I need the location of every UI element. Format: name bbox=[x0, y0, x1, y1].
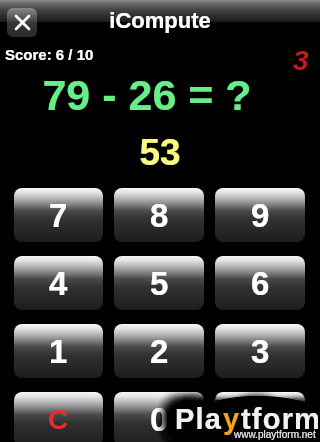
staticText: tform bbox=[240, 401, 320, 433]
staticText: Pla bbox=[174, 404, 222, 436]
staticText: 79 - 26 = ? bbox=[0, 71, 307, 119]
staticText: y bbox=[224, 403, 242, 435]
staticText: y bbox=[225, 404, 243, 436]
staticText: y bbox=[224, 402, 242, 434]
staticText: Pla bbox=[177, 402, 225, 434]
staticText: Pla bbox=[177, 404, 225, 436]
button[interactable]: 6 bbox=[215, 256, 305, 310]
button[interactable]: = bbox=[215, 392, 305, 442]
staticText: y bbox=[221, 405, 239, 437]
staticText: 5 bbox=[150, 265, 169, 302]
staticText: 8 bbox=[150, 197, 169, 234]
staticText: tform bbox=[241, 406, 320, 438]
staticText: y bbox=[223, 403, 241, 435]
button[interactable]: 7 bbox=[14, 188, 103, 242]
staticText: tform bbox=[242, 401, 320, 433]
staticText: y bbox=[223, 405, 241, 437]
staticText: Pla bbox=[173, 404, 221, 436]
staticText: Pla bbox=[176, 403, 224, 435]
button[interactable]: 5 bbox=[114, 256, 204, 310]
staticText: Pla bbox=[174, 403, 222, 435]
staticText: y bbox=[222, 405, 240, 437]
staticText: tform bbox=[240, 404, 320, 436]
staticText: Pla bbox=[177, 401, 225, 433]
staticText: y bbox=[221, 401, 239, 433]
staticText: tform bbox=[244, 403, 320, 435]
staticText: Pla bbox=[175, 402, 223, 434]
staticText: Pla bbox=[174, 401, 222, 433]
staticText: y bbox=[222, 404, 240, 436]
staticText: y bbox=[225, 401, 243, 433]
staticText: Pla bbox=[175, 400, 223, 432]
staticText: tform bbox=[241, 403, 320, 435]
staticText: tform bbox=[241, 401, 320, 433]
staticText: tform bbox=[240, 405, 320, 437]
staticText: tform bbox=[239, 403, 320, 435]
staticText: Pla bbox=[175, 401, 223, 433]
staticText: y bbox=[223, 403, 241, 435]
staticText: Pla bbox=[175, 404, 223, 436]
staticText: y bbox=[224, 405, 242, 437]
staticText: Pla bbox=[173, 405, 221, 437]
staticText: Pla bbox=[173, 401, 221, 433]
staticText: 2 bbox=[150, 333, 169, 370]
staticText: tform bbox=[239, 404, 320, 436]
staticText: 6 bbox=[251, 265, 270, 302]
staticText: y bbox=[222, 403, 240, 435]
staticText: 3 bbox=[293, 45, 309, 76]
staticText: 4 bbox=[49, 265, 68, 302]
staticText: 1 bbox=[49, 333, 68, 370]
staticText: Pla bbox=[175, 403, 223, 435]
button[interactable]: 2 bbox=[114, 324, 204, 378]
staticText: Pla bbox=[173, 402, 221, 434]
button[interactable]: C bbox=[14, 392, 103, 442]
staticText: tform bbox=[243, 401, 320, 433]
staticText: C bbox=[48, 404, 69, 435]
staticText: 0 bbox=[150, 401, 169, 438]
staticText: y bbox=[225, 402, 243, 434]
staticText: Pla bbox=[173, 403, 221, 435]
button[interactable]: 3 bbox=[215, 324, 305, 378]
staticText: y bbox=[221, 404, 239, 436]
staticText: Pla bbox=[176, 402, 224, 434]
staticText: tform bbox=[243, 404, 320, 436]
staticText: tform bbox=[241, 400, 320, 432]
staticText: = bbox=[250, 401, 270, 438]
staticText: y bbox=[226, 403, 244, 435]
staticText: Pla bbox=[176, 401, 224, 433]
staticText: y bbox=[221, 403, 239, 435]
staticText: y bbox=[225, 403, 243, 435]
staticText: tform bbox=[241, 403, 320, 435]
staticText: tform bbox=[240, 402, 320, 434]
staticText: Pla bbox=[172, 403, 220, 435]
staticText: y bbox=[223, 401, 241, 433]
staticText: Pla bbox=[175, 406, 223, 438]
button[interactable]: 1 bbox=[14, 324, 103, 378]
staticText: tform bbox=[243, 402, 320, 434]
staticText: tform bbox=[242, 405, 320, 437]
button[interactable]: 0 bbox=[114, 392, 204, 442]
staticText: Pla bbox=[175, 403, 223, 435]
staticText: y bbox=[225, 405, 243, 437]
staticText: tform bbox=[239, 401, 320, 433]
staticText: Pla bbox=[178, 403, 226, 435]
button[interactable]: 4 bbox=[14, 256, 103, 310]
staticText: tform bbox=[243, 403, 320, 435]
staticText: www.playtform.net bbox=[234, 429, 316, 440]
staticText: Pla bbox=[176, 404, 224, 436]
staticText: Pla bbox=[176, 405, 224, 437]
staticText: tform bbox=[242, 403, 320, 435]
staticText: tform bbox=[242, 404, 320, 436]
button[interactable]: Close bbox=[7, 8, 37, 37]
staticText: 53 bbox=[0, 132, 320, 173]
staticText: 7 bbox=[49, 197, 68, 234]
staticText: iCompute bbox=[0, 8, 320, 33]
button[interactable]: 8 bbox=[114, 188, 204, 242]
staticText: y bbox=[223, 406, 241, 438]
staticText: tform bbox=[240, 403, 320, 435]
staticText: 9 bbox=[251, 197, 270, 234]
staticText: tform bbox=[239, 402, 320, 434]
button[interactable]: 9 bbox=[215, 188, 305, 242]
staticText: tform bbox=[241, 402, 320, 434]
staticText: tform bbox=[242, 402, 320, 434]
